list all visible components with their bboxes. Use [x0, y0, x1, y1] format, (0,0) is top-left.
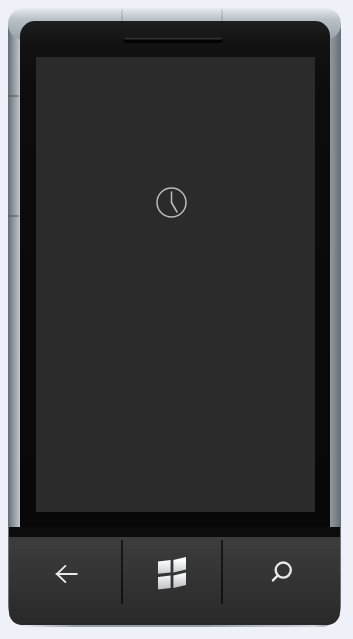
button[interactable]: Search [222, 537, 340, 625]
button[interactable]: Back [9, 537, 122, 625]
button[interactable]: Start [122, 537, 222, 625]
